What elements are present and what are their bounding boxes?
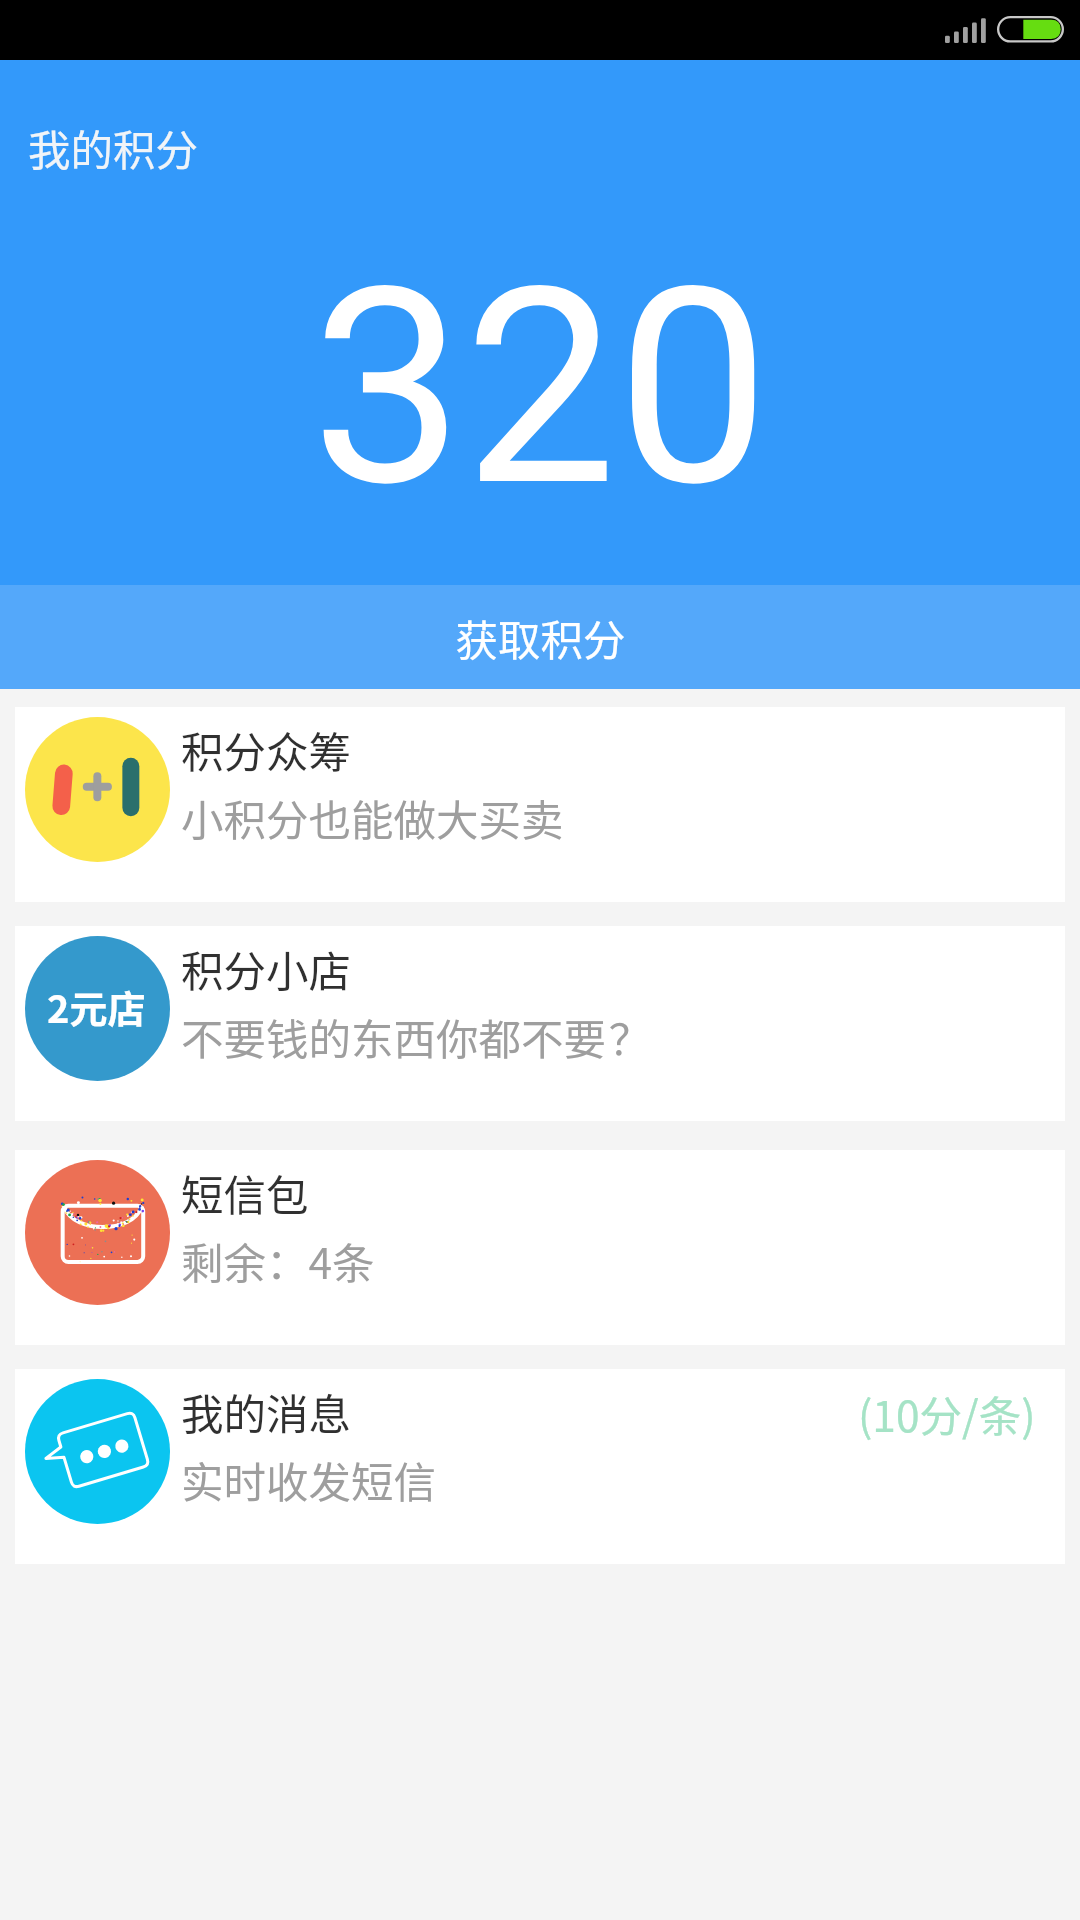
other: 积分众筹 xyxy=(25,717,170,862)
staticText: 320 xyxy=(311,229,770,548)
staticText: 不要钱的东西你都不要 ？ xyxy=(181,1006,652,1068)
staticText: 我的消息 xyxy=(181,1381,352,1443)
button[interactable]: 短信包 xyxy=(15,1150,1065,1345)
staticText: (10分/条) xyxy=(858,1383,1036,1445)
staticText: 短信包 xyxy=(181,1162,309,1224)
staticText: 积分小店 xyxy=(181,938,352,1000)
staticText: 剩余：4条 xyxy=(181,1230,375,1292)
other: 短信包 xyxy=(25,1160,170,1305)
button[interactable]: 我的消息 xyxy=(15,1369,1065,1564)
button[interactable]: 积分小店 xyxy=(15,926,1065,1121)
other: 积分小店 xyxy=(25,936,170,1081)
staticText: 实时收发短信 xyxy=(181,1449,437,1511)
button[interactable]: 积分众筹 xyxy=(15,707,1065,902)
button[interactable]: 获取积分 xyxy=(0,585,1080,689)
staticText: 我的积分 xyxy=(28,117,199,179)
staticText: 2元店 xyxy=(47,979,146,1034)
staticText: 获取积分 xyxy=(455,607,626,669)
staticText: 积分众筹 xyxy=(181,719,352,781)
other: 我的消息 xyxy=(25,1379,170,1524)
staticText: 小积分也能做大买卖 xyxy=(181,787,564,849)
